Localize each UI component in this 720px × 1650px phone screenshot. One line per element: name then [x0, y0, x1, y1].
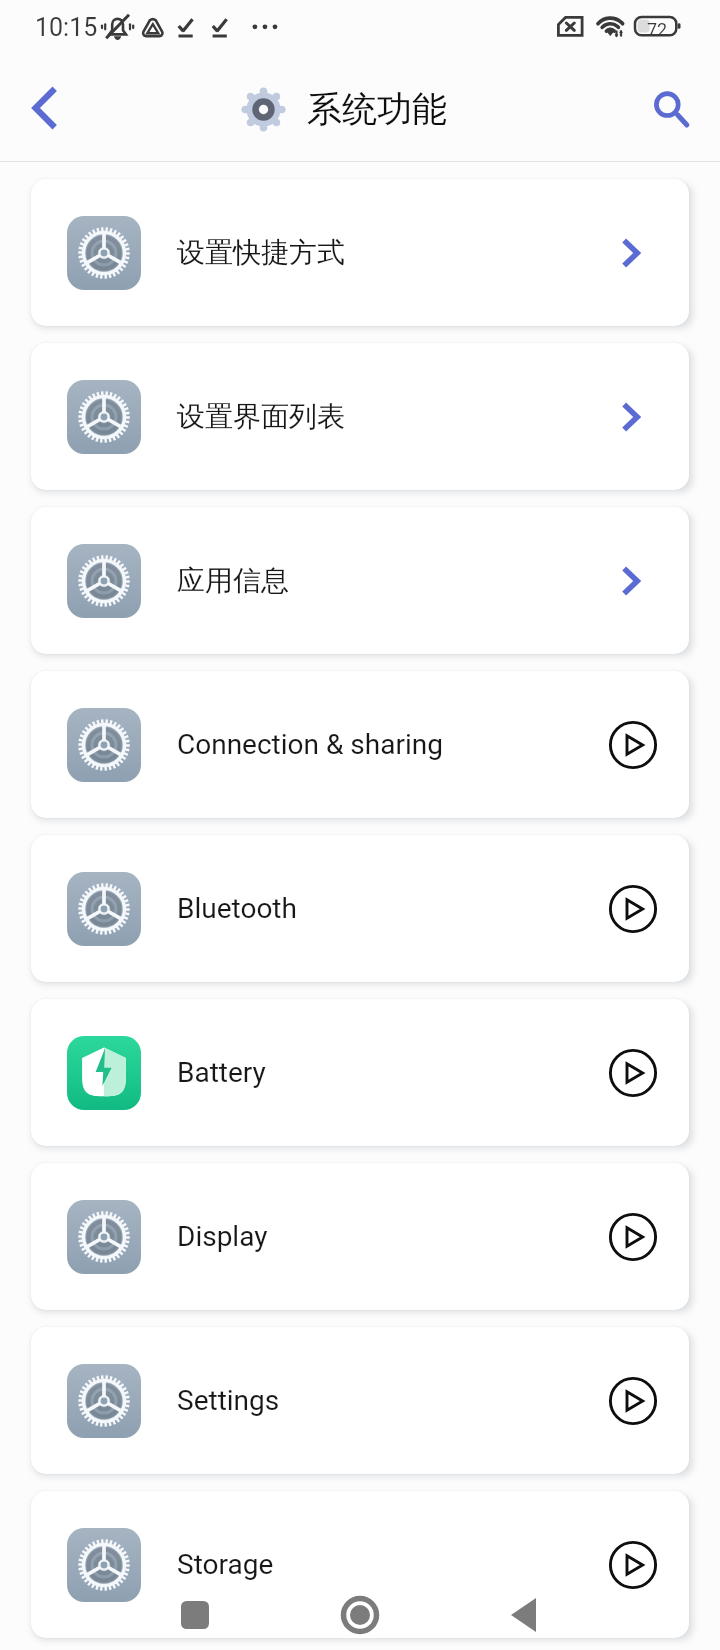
staticText: Settings — [177, 1384, 280, 1417]
button[interactable]: Back — [470, 1580, 580, 1650]
staticText: 设置界面列表 — [177, 399, 345, 434]
staticText: 72 — [647, 19, 668, 40]
staticText: Bluetooth — [177, 892, 297, 925]
button[interactable]: Battery — [31, 999, 689, 1146]
button[interactable]: Display — [31, 1163, 689, 1310]
button[interactable]: Bluetooth — [31, 835, 689, 982]
staticText: 系统功能 — [307, 87, 447, 131]
staticText: Connection & sharing — [177, 728, 443, 761]
button[interactable]: 设置快捷方式 — [31, 179, 689, 326]
button[interactable]: Settings — [31, 1327, 689, 1474]
staticText: Storage — [177, 1548, 274, 1581]
staticText: 设置快捷方式 — [177, 235, 345, 270]
button[interactable]: Connection & sharing — [31, 671, 689, 818]
button[interactable]: Storage — [31, 1491, 689, 1638]
button[interactable]: Home — [305, 1580, 415, 1650]
staticText: 应用信息 — [177, 563, 289, 598]
staticText: Display — [177, 1220, 268, 1253]
button[interactable]: Recent apps — [140, 1580, 250, 1650]
button[interactable]: 设置界面列表 — [31, 343, 689, 490]
button[interactable]: 应用信息 — [31, 507, 689, 654]
button[interactable]: Search — [628, 55, 720, 161]
staticText: 10:15 — [35, 13, 98, 42]
button[interactable]: Back — [0, 55, 92, 161]
staticText: Battery — [177, 1056, 266, 1089]
